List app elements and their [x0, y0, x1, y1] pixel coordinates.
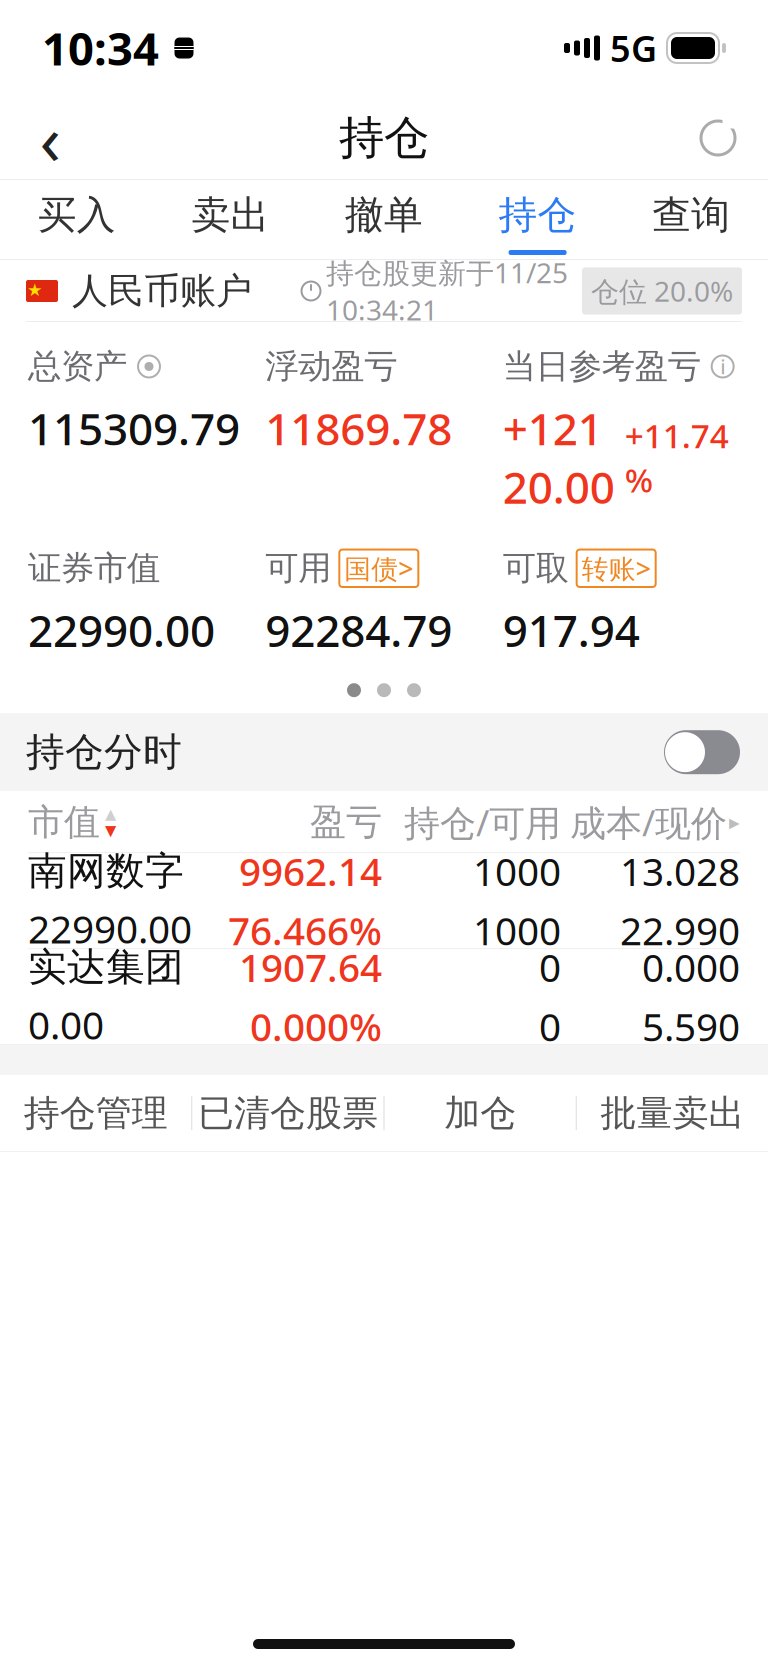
- button[interactable]: 已清仓股票: [192, 1075, 383, 1151]
- staticText: 浮动盈亏: [265, 346, 397, 387]
- staticText: 持仓: [499, 191, 577, 239]
- staticText: 11869.78: [265, 399, 452, 457]
- staticText: 0.000%: [250, 1001, 382, 1052]
- staticText: 当日参考盈亏: [503, 346, 701, 387]
- button[interactable]: 返回: [12, 100, 88, 176]
- staticText: 盈亏: [310, 800, 382, 844]
- staticText: 国债>: [344, 551, 413, 586]
- button[interactable]: 撤单: [307, 180, 461, 260]
- staticText: 115309.79: [28, 399, 240, 457]
- button[interactable]: 南网数字: [0, 853, 768, 948]
- staticText: +12120.00: [503, 399, 615, 516]
- button[interactable]: 加仓: [384, 1075, 576, 1151]
- staticText: 加仓: [444, 1091, 516, 1135]
- staticText: 1907.64: [239, 941, 382, 993]
- staticText: 持仓分时: [26, 728, 182, 776]
- staticText: 1000: [473, 905, 561, 956]
- staticText: +11.74%: [625, 413, 729, 502]
- staticText: 转账>: [582, 551, 651, 586]
- staticText: 证券市值: [28, 548, 160, 589]
- button[interactable]: 刷新: [680, 100, 756, 176]
- staticText: 买入: [38, 191, 116, 239]
- staticText: ★: [27, 280, 43, 300]
- staticText: 总资产: [28, 346, 127, 387]
- staticText: ▸: [729, 810, 740, 834]
- staticText: ▲: [105, 805, 116, 822]
- staticText: 13.028: [620, 845, 740, 897]
- staticText: 实达集团: [28, 943, 184, 991]
- button[interactable]: 转账>: [577, 550, 656, 587]
- staticText: 92284.79: [265, 601, 452, 659]
- staticText: 批量卖出: [600, 1091, 744, 1135]
- staticText: 0.000: [642, 941, 740, 993]
- staticText: 卖出: [191, 191, 269, 239]
- staticText: ‹: [39, 92, 60, 184]
- staticText: 持仓管理: [24, 1091, 168, 1135]
- button[interactable]: 卖出: [154, 180, 307, 260]
- staticText: 已清仓股票: [198, 1091, 378, 1135]
- staticText: 917.94: [503, 601, 640, 659]
- staticText: 可用: [265, 548, 331, 589]
- staticText: 1000: [473, 845, 561, 897]
- staticText: 成本/现价: [570, 798, 727, 846]
- staticText: 持仓股更新于11/25 10:34:21: [326, 254, 568, 328]
- button[interactable]: 实达集团: [0, 949, 768, 1044]
- button[interactable]: 持仓分时开关: [662, 727, 742, 777]
- staticText: 76.466%: [228, 905, 382, 956]
- button[interactable]: 查询: [614, 180, 768, 260]
- button[interactable]: 批量卖出: [577, 1075, 768, 1151]
- staticText: 10:34: [42, 18, 159, 78]
- staticText: 5.590: [642, 1001, 740, 1052]
- staticText: 0: [539, 941, 561, 993]
- staticText: 0: [539, 1001, 561, 1052]
- staticText: 仓位 20.0%: [591, 272, 733, 310]
- staticText: 22.990: [620, 905, 740, 956]
- staticText: 撤单: [345, 191, 423, 239]
- staticText: 可取: [503, 548, 569, 589]
- staticText: 人民币账户: [72, 269, 252, 313]
- staticText: 0.00: [28, 999, 104, 1050]
- button[interactable]: 持仓: [461, 180, 614, 260]
- staticText: 9962.14: [239, 845, 382, 897]
- staticText: 22990.00: [28, 601, 215, 659]
- staticText: 22990.00: [28, 903, 192, 954]
- staticText: 5G: [610, 24, 657, 72]
- button[interactable]: 国债>: [339, 550, 418, 587]
- staticText: i: [720, 353, 725, 380]
- staticText: 市值: [28, 800, 100, 844]
- staticText: 持仓/可用: [404, 798, 561, 846]
- button[interactable]: 持仓管理: [0, 1075, 191, 1151]
- staticText: ▼: [105, 822, 116, 839]
- staticText: 南网数字: [28, 847, 184, 895]
- staticText: 持仓: [339, 110, 429, 166]
- staticText: 查询: [652, 191, 730, 239]
- button[interactable]: 买入: [0, 180, 154, 260]
